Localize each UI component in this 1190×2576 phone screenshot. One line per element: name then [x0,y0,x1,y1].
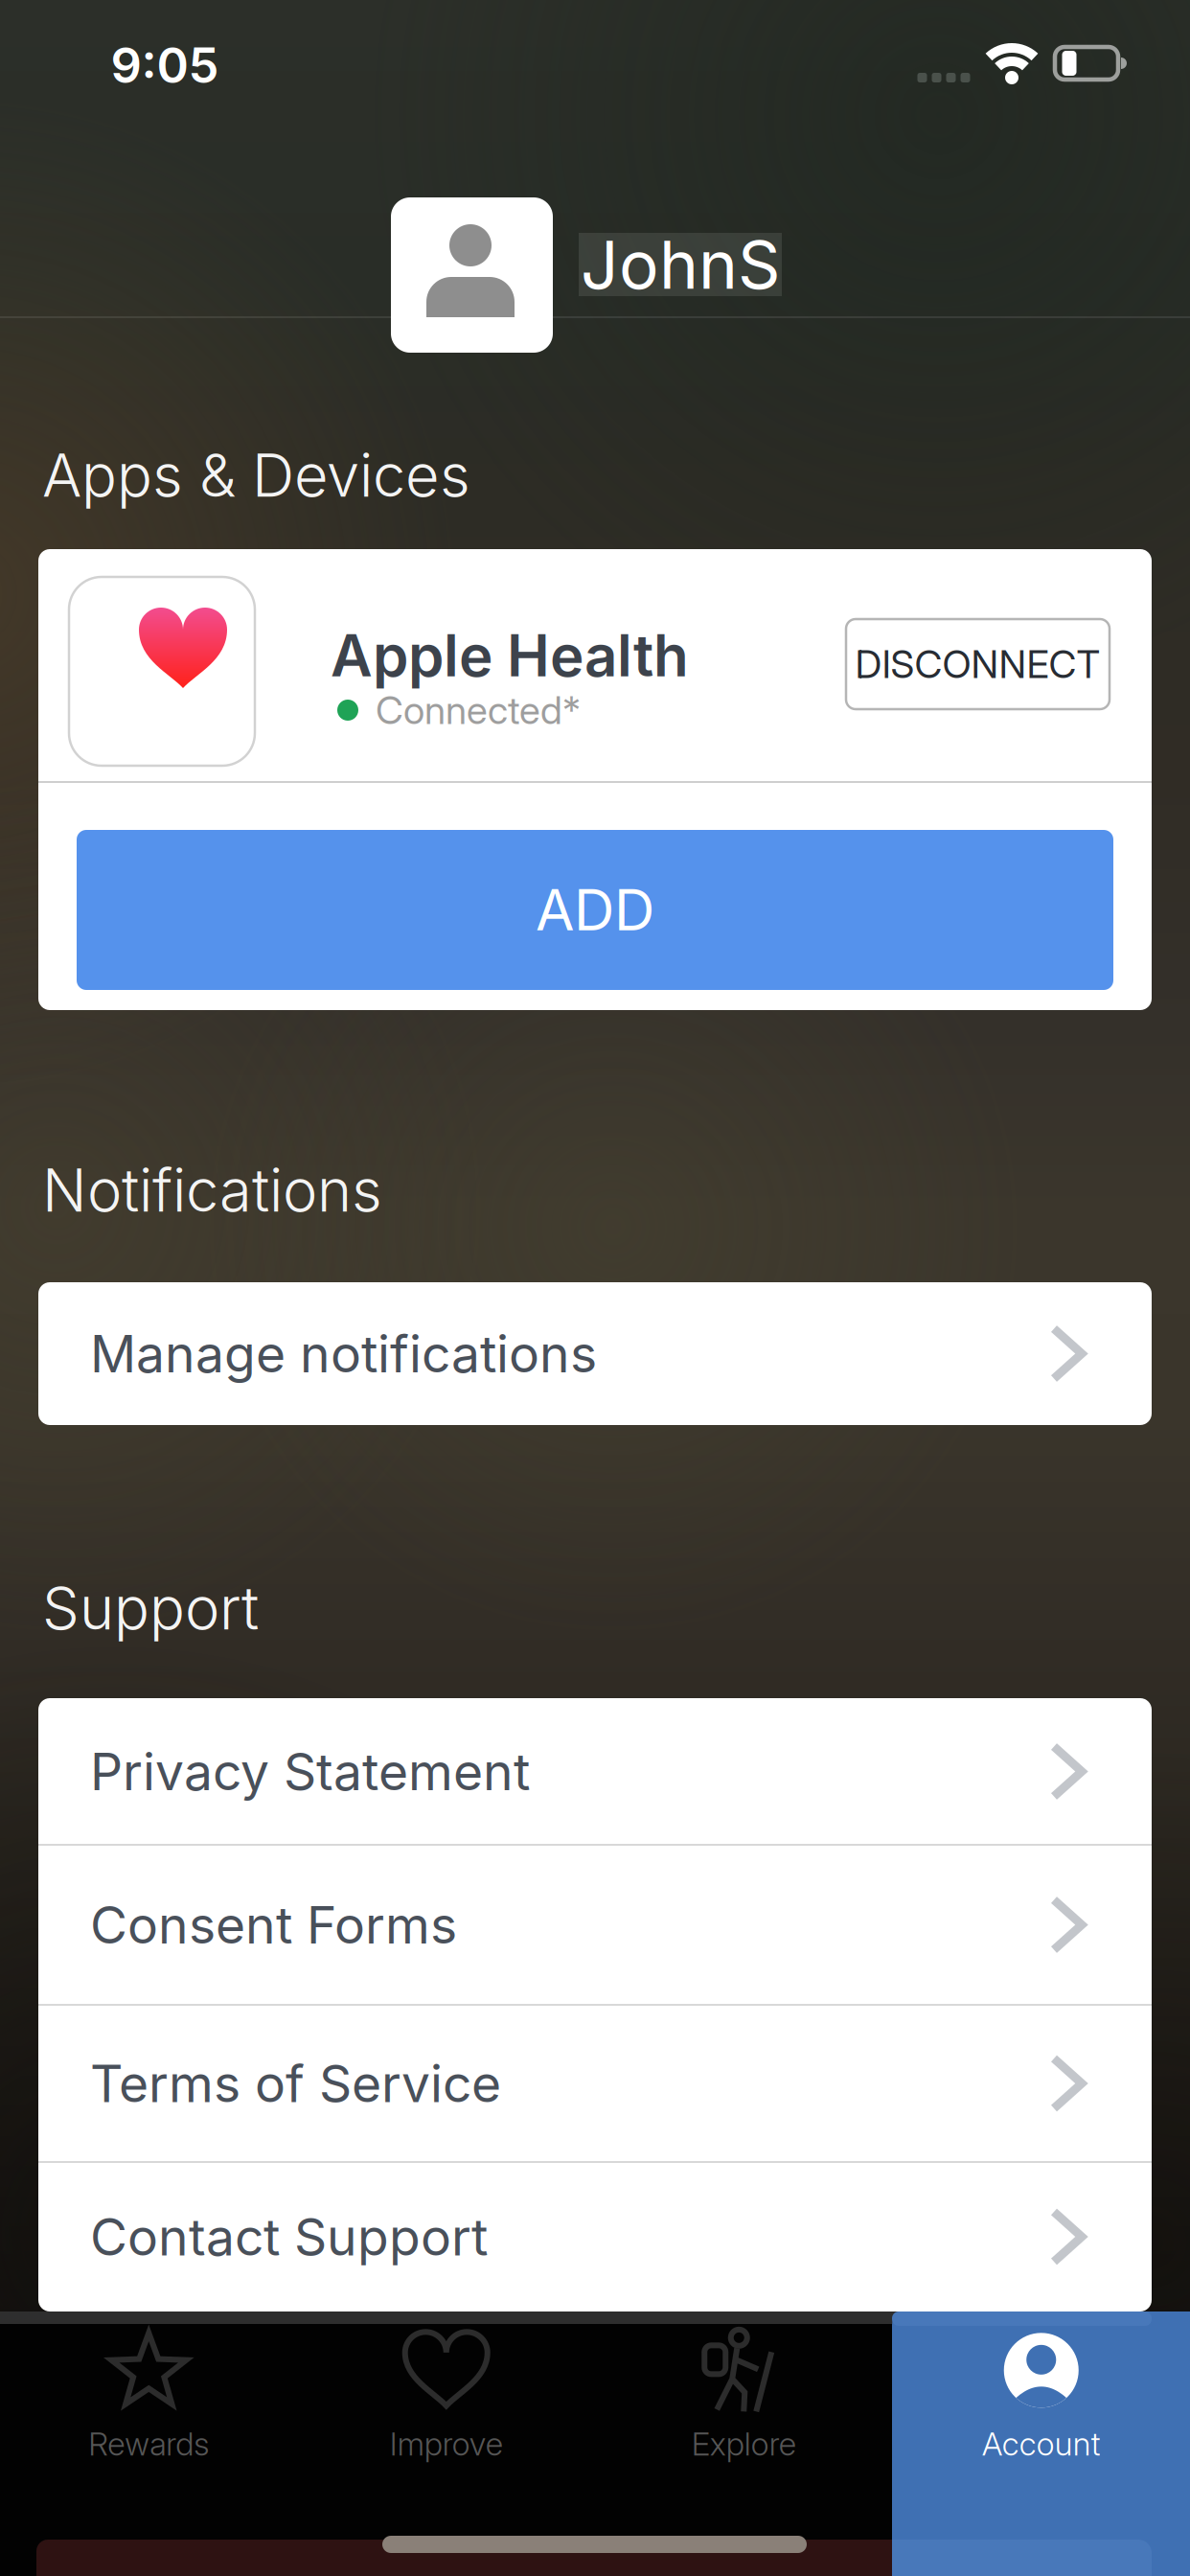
staticText: 9:05 [111,37,219,94]
staticText: Connected* [376,688,581,733]
staticText: DISCONNECT [855,642,1100,687]
button[interactable]: Account [898,2281,1185,2511]
button[interactable]: Explore [600,2281,887,2511]
staticText: Notifications [42,1156,382,1225]
staticText: Contact Support [90,2207,488,2267]
staticText: Explore [692,2425,796,2463]
button[interactable]: Terms of Service [38,2008,1152,2159]
staticText: Manage notifications [90,1323,597,1384]
button[interactable]: Rewards [5,2281,292,2511]
button[interactable]: Consent Forms [38,1849,1152,2001]
staticText: Privacy Statement [90,1741,530,1802]
staticText: Apps & Devices [42,441,470,510]
button[interactable]: Improve [303,2281,590,2511]
button[interactable]: ADD [77,830,1113,990]
staticText: Terms of Service [90,2053,501,2114]
staticText: Account [982,2425,1101,2463]
button[interactable]: JohnS [391,197,782,353]
staticText: ADD [536,877,654,943]
staticText: Apple Health [331,622,689,689]
staticText: Rewards [88,2425,209,2463]
staticText: JohnS [581,225,780,304]
staticText: Improve [390,2425,503,2463]
button[interactable]: Manage notifications [38,1282,1152,1425]
button[interactable]: Privacy Statement [38,1696,1152,1847]
button[interactable]: Contact Support [38,2161,1152,2312]
staticText: Support [42,1573,259,1643]
button[interactable]: DISCONNECT [846,619,1110,709]
staticText: Consent Forms [90,1895,457,1955]
